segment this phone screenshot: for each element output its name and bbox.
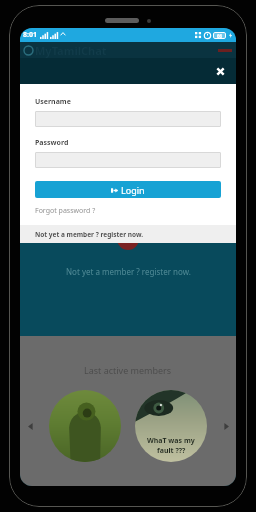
button[interactable] <box>35 152 221 168</box>
button[interactable]: Close <box>212 63 228 79</box>
staticText: 66 <box>217 33 223 39</box>
staticText: G <box>122 232 130 246</box>
staticText: Not yet a member ? register now. <box>66 266 191 277</box>
button[interactable]: Not yet a member ? register now. <box>66 266 191 277</box>
button[interactable]: Not yet a member ? register now. <box>20 225 236 243</box>
staticText: fault ??? <box>157 446 186 456</box>
staticText: 8:01 <box>23 30 37 40</box>
staticText: + <box>130 234 135 244</box>
staticText: WhaT was my <box>147 436 195 446</box>
staticText: Password <box>35 138 69 148</box>
button[interactable]: Login <box>35 181 221 198</box>
button[interactable]: Forgot password ? <box>35 205 221 217</box>
button[interactable] <box>35 111 221 127</box>
staticText: Last active members <box>84 364 172 376</box>
staticText: Username <box>35 97 71 107</box>
staticText: Not yet a member ? register now. <box>35 230 144 239</box>
button[interactable]: Previous <box>24 420 36 432</box>
staticText: Forgot password ? <box>35 206 96 216</box>
button[interactable]: Sign in with Google Plus <box>117 228 139 250</box>
staticText: MyTamilChat <box>35 43 107 58</box>
button[interactable]: Member avatar <box>135 390 207 462</box>
staticText: Login <box>121 184 145 196</box>
button[interactable]: Member avatar <box>49 390 121 462</box>
button[interactable]: Next <box>220 420 232 432</box>
